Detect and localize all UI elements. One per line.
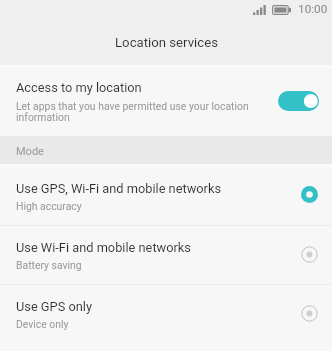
staticText: Battery saving [16,259,82,271]
button[interactable]: Use Wi-Fi and mobile networks [0,226,332,284]
staticText: High accuracy [16,200,82,212]
button[interactable]: Access to my location switch, on [278,91,319,111]
button[interactable]: Access to my location [0,65,332,136]
staticText: Access to my location [16,80,142,95]
staticText: Use Wi-Fi and mobile networks [16,240,191,255]
other: Battery [272,5,291,15]
button[interactable]: Use GPS only, option [301,305,318,322]
button[interactable]: Use GPS only [0,285,332,351]
staticText: Use GPS only [16,299,92,314]
button[interactable]: Use GPS, Wi-Fi and mobile networks [0,164,332,225]
other: Mobile signal strength [253,5,266,15]
button[interactable]: Use Wi-Fi and mobile networks, option [301,246,318,263]
staticText: Location services [115,35,218,50]
staticText: Use GPS, Wi-Fi and mobile networks [16,181,221,196]
staticText: Mode [16,145,44,158]
button[interactable]: Use GPS, Wi-Fi and mobile networks, sele… [301,186,318,203]
staticText: Device only [16,318,69,330]
staticText: Let apps that you have permitted use you… [16,100,266,124]
staticText: 10:00 [298,2,328,16]
